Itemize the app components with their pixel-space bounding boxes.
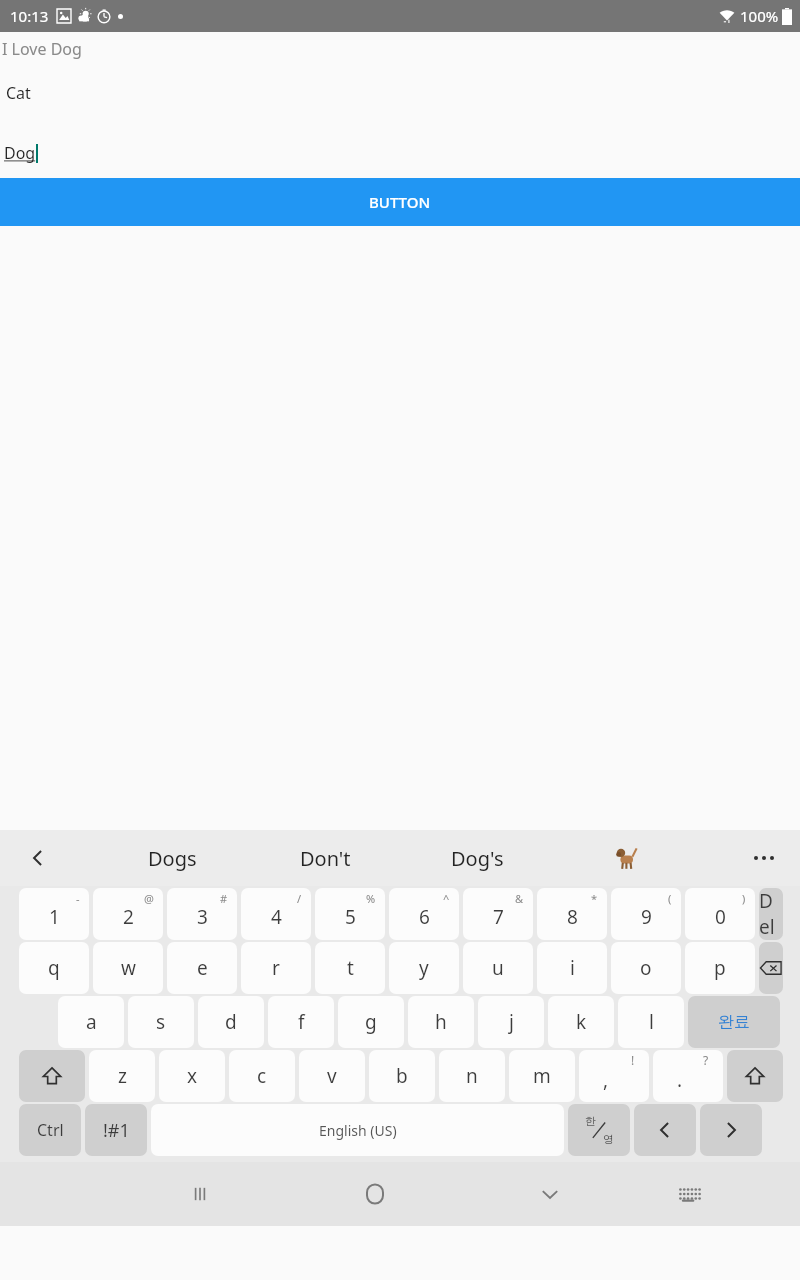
button[interactable]: r <box>241 942 311 994</box>
staticText: 7 <box>493 904 504 930</box>
button[interactable]: i <box>537 942 607 994</box>
staticText: 한 <box>585 1114 596 1128</box>
button[interactable]: ! <box>579 1050 649 1102</box>
button[interactable]: b <box>369 1050 435 1102</box>
staticText: @ <box>144 891 154 906</box>
button[interactable]: Shift <box>19 1050 85 1102</box>
staticText: % <box>366 891 376 906</box>
button[interactable]: !#1 <box>85 1104 147 1156</box>
staticText: English (US) <box>319 1121 397 1140</box>
button[interactable]: Shift <box>727 1050 783 1102</box>
button[interactable]: Dog emoji suggestion <box>597 830 657 886</box>
button[interactable]: ^ <box>389 888 459 940</box>
button[interactable]: Dogs <box>97 830 247 886</box>
button[interactable]: Switch language <box>568 1104 630 1156</box>
button[interactable]: More options <box>728 830 800 886</box>
staticText: j <box>509 1009 514 1035</box>
button[interactable]: Ctrl <box>19 1104 81 1156</box>
button[interactable]: p <box>685 942 755 994</box>
staticText: # <box>220 891 228 906</box>
button[interactable]: c <box>229 1050 295 1102</box>
button[interactable]: ( <box>611 888 681 940</box>
staticText: !#1 <box>103 1118 130 1143</box>
staticText: 6 <box>419 904 430 930</box>
button[interactable]: Don't <box>250 830 400 886</box>
staticText: z <box>118 1063 127 1089</box>
staticText: ? <box>703 1052 709 1068</box>
button[interactable]: l <box>618 996 684 1048</box>
button[interactable]: k <box>548 996 614 1048</box>
staticText: q <box>48 955 60 981</box>
button[interactable]: BUTTON <box>0 178 800 226</box>
staticText: 5 <box>345 904 356 930</box>
staticText: g <box>365 1009 377 1035</box>
button[interactable]: Home <box>325 1162 425 1226</box>
button[interactable]: g <box>338 996 404 1048</box>
staticText: d <box>225 1009 237 1035</box>
staticText: ! <box>631 1052 635 1068</box>
staticText: i <box>570 955 575 981</box>
staticText: x <box>187 1063 198 1089</box>
staticText: ) <box>742 891 746 906</box>
button[interactable]: h <box>408 996 474 1048</box>
staticText: 0 <box>715 904 726 930</box>
staticText: f <box>298 1009 305 1035</box>
button[interactable]: z <box>89 1050 155 1102</box>
button[interactable]: j <box>478 996 544 1048</box>
button[interactable]: ) <box>685 888 755 940</box>
button[interactable]: @ <box>93 888 163 940</box>
button[interactable]: Choose input method <box>645 1162 735 1226</box>
button[interactable]: a <box>58 996 124 1048</box>
staticText: 3 <box>197 904 208 930</box>
button[interactable]: Hide keyboard <box>500 1162 600 1226</box>
staticText: * <box>591 891 598 906</box>
button[interactable]: n <box>439 1050 505 1102</box>
staticText: n <box>466 1063 478 1089</box>
button[interactable]: Previous suggestions <box>0 830 76 886</box>
staticText: 10:13 <box>10 6 49 26</box>
button[interactable]: e <box>167 942 237 994</box>
button[interactable]: u <box>463 942 533 994</box>
staticText: ( <box>668 891 672 906</box>
staticText: b <box>396 1063 408 1089</box>
button[interactable]: Move cursor left <box>634 1104 696 1156</box>
button[interactable]: % <box>315 888 385 940</box>
staticText: t <box>347 955 354 981</box>
button[interactable]: & <box>463 888 533 940</box>
staticText: , <box>603 1067 609 1093</box>
button[interactable]: s <box>128 996 194 1048</box>
staticText: s <box>156 1009 166 1035</box>
staticText: k <box>576 1009 587 1035</box>
staticText: 1 <box>49 904 60 930</box>
staticText: ^ <box>443 891 450 906</box>
staticText: / <box>297 891 302 906</box>
staticText: 100% <box>740 6 779 26</box>
button[interactable]: x <box>159 1050 225 1102</box>
button[interactable]: Dog's <box>402 830 552 886</box>
staticText: r <box>272 955 280 981</box>
button[interactable]: o <box>611 942 681 994</box>
button[interactable]: 완료 <box>688 996 780 1048</box>
staticText: Dogs <box>148 845 197 872</box>
button[interactable]: - <box>19 888 89 940</box>
button[interactable]: Backspace <box>759 942 783 994</box>
button[interactable]: Delete <box>759 888 783 940</box>
staticText: & <box>515 891 524 906</box>
staticText: a <box>86 1009 97 1035</box>
button[interactable]: d <box>198 996 264 1048</box>
button[interactable]: ? <box>653 1050 723 1102</box>
button[interactable]: # <box>167 888 237 940</box>
button[interactable]: English (US) <box>151 1104 564 1156</box>
button[interactable]: Move cursor right <box>700 1104 762 1156</box>
button[interactable]: / <box>241 888 311 940</box>
button[interactable]: f <box>268 996 334 1048</box>
button[interactable]: w <box>93 942 163 994</box>
button[interactable]: q <box>19 942 89 994</box>
button[interactable]: v <box>299 1050 365 1102</box>
staticText: u <box>492 955 504 981</box>
button[interactable]: y <box>389 942 459 994</box>
button[interactable]: * <box>537 888 607 940</box>
button[interactable]: m <box>509 1050 575 1102</box>
button[interactable]: t <box>315 942 385 994</box>
button[interactable]: Recent apps <box>150 1162 250 1226</box>
